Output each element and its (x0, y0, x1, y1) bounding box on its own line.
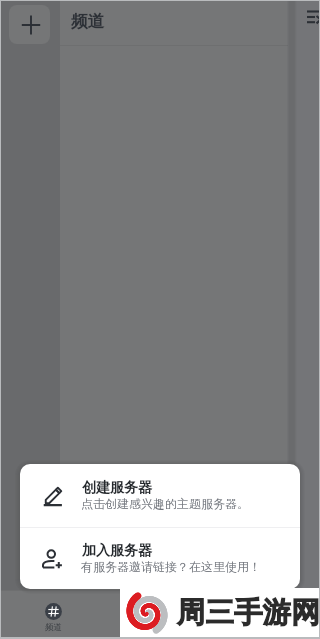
staticText: 私信 (152, 622, 169, 633)
staticText: 频道 (45, 622, 62, 633)
button[interactable]: 加入服务器 (20, 527, 300, 589)
button[interactable]: 私信 (107, 590, 214, 639)
staticText: 创建服务器 (82, 479, 152, 497)
staticText: 频道 (71, 11, 105, 32)
staticText: 周三手游网 (177, 595, 320, 631)
button[interactable]: 我 (213, 590, 320, 639)
staticText: 我 (262, 622, 271, 633)
button[interactable]: 频道 (0, 590, 107, 639)
staticText: 有服务器邀请链接？在这里使用！ (81, 559, 261, 574)
staticText: 加入服务器 (82, 542, 152, 560)
staticText: 点击创建感兴趣的主题服务器。 (81, 496, 249, 511)
button[interactable]: 创建服务器 (20, 464, 300, 526)
button[interactable]: Sort channels (305, 6, 320, 30)
button[interactable]: Add a server (9, 5, 50, 44)
